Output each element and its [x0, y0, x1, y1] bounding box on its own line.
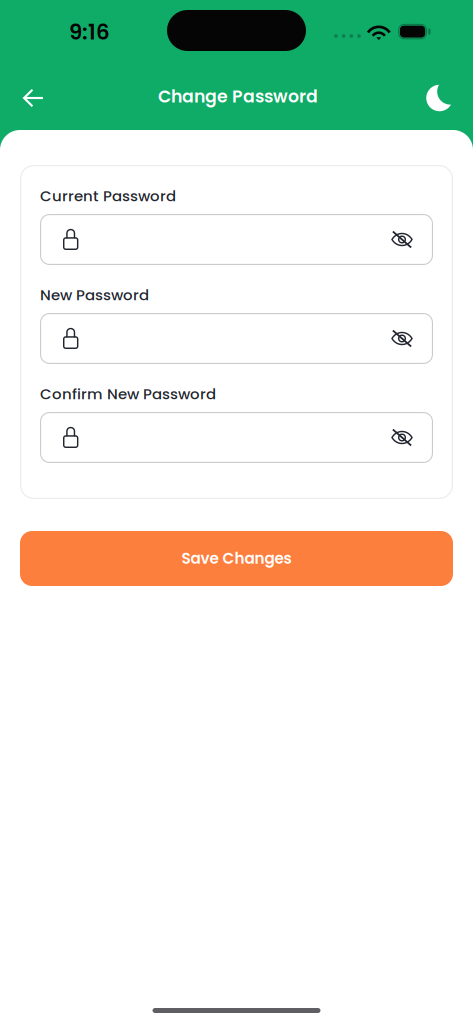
- button[interactable]: Show Confirm New Password: [371, 413, 433, 462]
- button[interactable]: Back: [11, 76, 55, 120]
- staticText: Save Changes: [181, 548, 291, 569]
- staticText: Current Password: [40, 185, 176, 206]
- button[interactable]: Save Changes: [20, 531, 453, 586]
- staticText: New Password: [40, 284, 149, 305]
- button[interactable]: Show Current Password: [371, 215, 433, 264]
- staticText: 9:16: [69, 17, 110, 47]
- button[interactable]: Show New Password: [371, 314, 433, 363]
- staticText: Confirm New Password: [40, 383, 216, 404]
- button[interactable]: Toggle dark mode: [417, 76, 461, 120]
- staticText: Change Password: [158, 84, 318, 109]
